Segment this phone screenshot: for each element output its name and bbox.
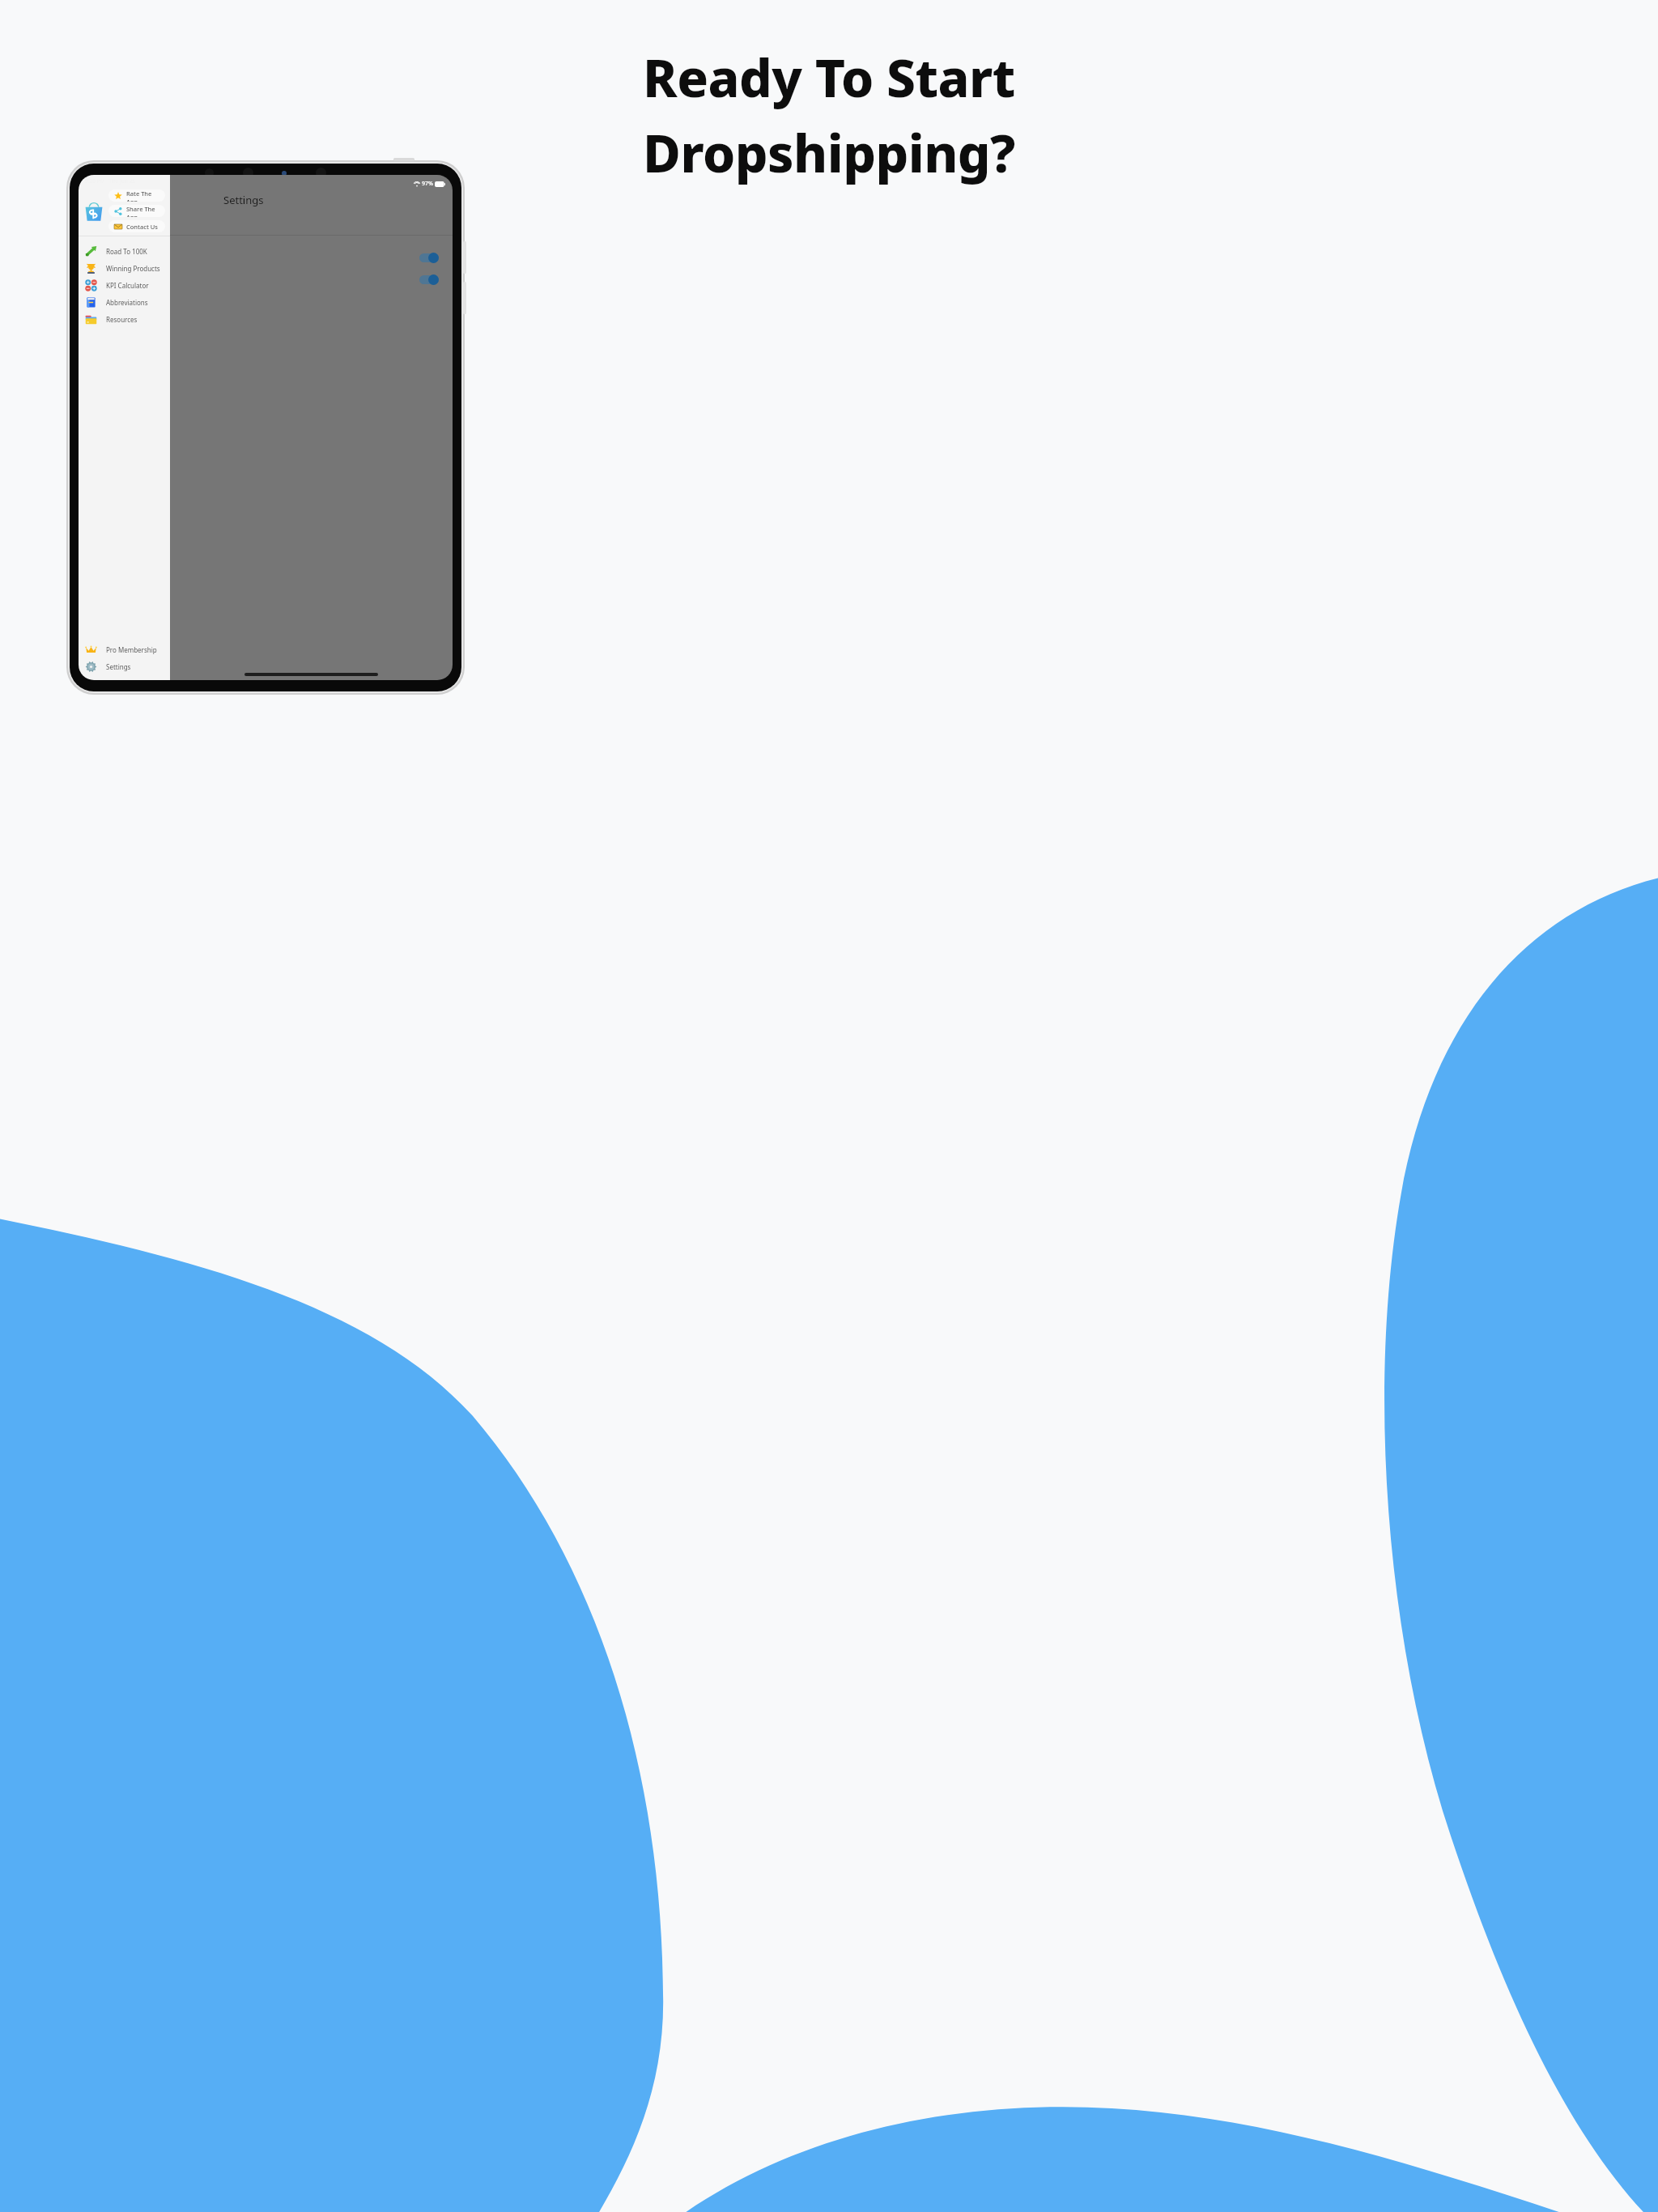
staticText: Resources [106,315,138,324]
staticText: Contact Us [126,223,158,231]
staticText: Rate The App [126,189,161,202]
staticText: Pro Membership [106,645,157,654]
button[interactable]: Share The App [108,205,165,217]
button[interactable]: KPI Calculator [79,277,170,294]
button[interactable]: Toggle [419,253,439,263]
staticText: Settings [106,662,131,671]
staticText: Road To 100K [106,247,147,256]
button[interactable]: Rate The App [108,189,165,202]
button[interactable]: Winning Products [79,260,170,277]
button[interactable]: Resources [79,311,170,328]
staticText: Share The App [126,205,161,217]
staticText: Dropshipping? [643,117,1015,188]
staticText: KPI Calculator [106,281,149,290]
button[interactable]: Road To 100K [79,243,170,260]
staticText: Abbreviations [106,298,148,307]
button[interactable]: Pro Membership [79,641,170,658]
button[interactable]: Abbreviations [79,294,170,311]
staticText: 97% [422,180,433,188]
other: App logo [83,201,104,222]
staticText: Settings [223,193,264,207]
staticText: 9:20 PM Thu Jun 25 [85,177,136,185]
button[interactable]: Contact Us [108,220,165,232]
button[interactable]: Toggle [419,274,439,285]
button[interactable]: Settings [79,658,170,675]
staticText: Winning Products [106,264,160,273]
staticText: Ready To Start [643,42,1015,113]
